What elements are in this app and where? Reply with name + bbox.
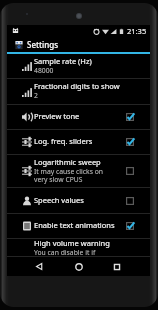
button[interactable]: Enable text animations xyxy=(7,214,150,239)
button[interactable]: Logarithmic sweep xyxy=(7,155,150,188)
staticText: Sample rate (Hz) xyxy=(34,56,92,66)
button[interactable]: Toggle setting xyxy=(126,113,134,121)
button[interactable]: Recent apps xyxy=(107,259,127,274)
button[interactable]: Toggle setting xyxy=(126,197,134,205)
button[interactable]: Fractional digits to show xyxy=(7,79,150,105)
staticText: You can disable it if you know the risks xyxy=(34,248,96,255)
staticText: Log. freq. sliders xyxy=(34,136,93,146)
staticText: It may cause clicks on very slow CPUS xyxy=(34,167,104,184)
staticText: 2 xyxy=(34,91,38,100)
staticText: Settings xyxy=(27,39,59,50)
button[interactable]: Home xyxy=(69,259,89,274)
button[interactable]: Toggle setting xyxy=(126,167,134,175)
staticText: Fractional digits to show xyxy=(34,81,120,91)
staticText: Enable text animations xyxy=(34,220,115,230)
button[interactable]: Toggle setting xyxy=(126,222,134,230)
staticText: High volume warning xyxy=(34,238,110,248)
staticText: Logarithmic sweep xyxy=(34,157,101,167)
button[interactable]: Back xyxy=(29,259,49,274)
button[interactable]: Sample rate (Hz) xyxy=(7,54,150,79)
staticText: Speech values xyxy=(34,195,84,205)
button[interactable]: Toggle setting xyxy=(126,138,134,146)
button[interactable]: Preview tone xyxy=(7,105,150,130)
staticText: 48000 xyxy=(34,66,54,75)
staticText: Preview tone xyxy=(34,111,80,121)
button[interactable]: High volume warning xyxy=(7,239,150,257)
staticText: 21:35 xyxy=(127,26,147,36)
button[interactable]: Log. freq. sliders xyxy=(7,130,150,155)
button[interactable]: Speech values xyxy=(7,188,150,214)
